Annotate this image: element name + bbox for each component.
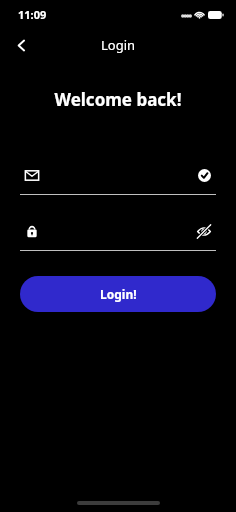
staticText: Welcome back! [20, 88, 216, 111]
staticText: Login [101, 36, 136, 54]
button[interactable]: Show password [192, 219, 216, 243]
staticText: 11:09 [18, 7, 47, 22]
button[interactable]: Back [8, 32, 34, 58]
staticText: Login! [100, 286, 137, 302]
button[interactable]: Email validated [192, 163, 216, 187]
button[interactable]: Login! [20, 276, 216, 312]
